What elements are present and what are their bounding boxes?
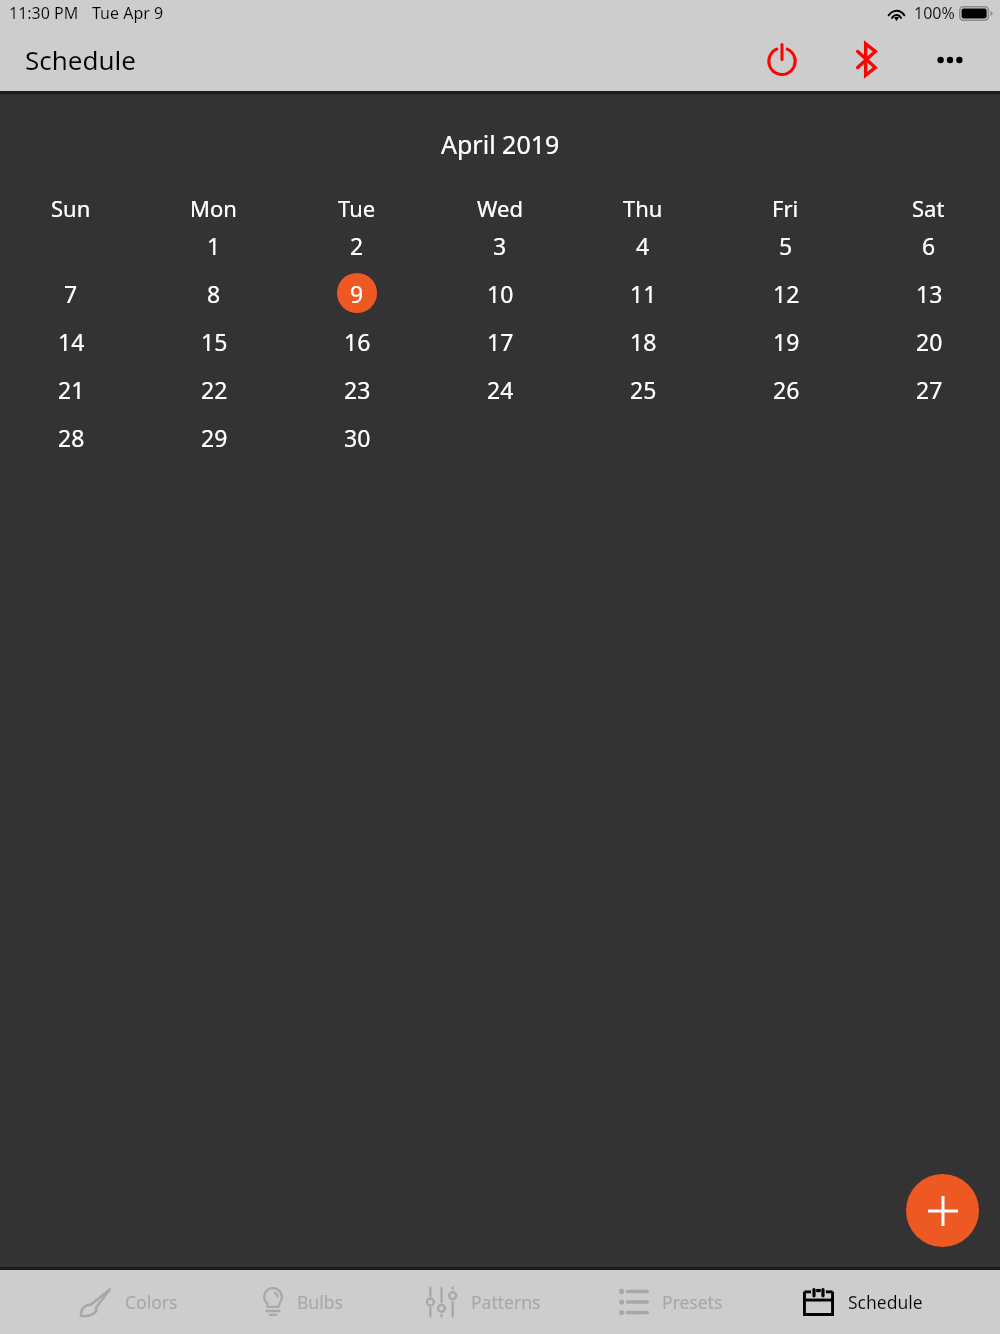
staticText: Mon [190,193,237,221]
button[interactable]: Bluetooth [824,28,908,91]
staticText: 7 [64,278,78,309]
button[interactable]: 22 [194,369,234,409]
staticText: Sat [912,193,945,221]
button[interactable]: Presets [619,1270,723,1334]
button[interactable]: Colors [80,1270,178,1334]
button[interactable]: 12 [766,273,806,313]
button[interactable]: 11 [623,273,663,313]
staticText: 6 [922,230,936,261]
staticText: 8 [207,278,221,309]
button[interactable]: 2 [337,225,377,265]
staticText: 27 [916,374,943,405]
staticText: Sun [51,193,91,221]
staticText: 3 [493,230,507,261]
staticText: 17 [487,326,514,357]
button[interactable]: 28 [51,417,91,457]
staticText: 5 [779,230,793,261]
button[interactable]: 6 [909,225,949,265]
button[interactable]: 21 [51,369,91,409]
button[interactable]: 15 [194,321,234,361]
button[interactable]: 25 [623,369,663,409]
staticText: Bulbs [297,1290,343,1314]
staticText: 28 [58,422,85,453]
button[interactable]: 27 [909,369,949,409]
staticText: Thu [623,193,663,221]
button[interactable]: Add schedule [906,1174,979,1247]
staticText: Schedule [848,1290,923,1314]
staticText: 26 [773,374,800,405]
button[interactable]: 13 [909,273,949,313]
staticText: 21 [58,374,85,405]
staticText: 18 [630,326,657,357]
staticText: 25 [630,374,657,405]
staticText: Patterns [471,1290,541,1314]
staticText: 22 [201,374,228,405]
staticText: Presets [662,1290,723,1314]
staticText: 15 [201,326,228,357]
button[interactable]: 3 [480,225,520,265]
button[interactable]: 16 [337,321,377,361]
staticText: 30 [344,422,371,453]
staticText: 19 [773,326,800,357]
staticText: 11 [630,278,657,309]
staticText: Wed [477,193,523,221]
staticText: 29 [201,422,228,453]
button[interactable]: 24 [480,369,520,409]
button[interactable]: 9 [337,273,377,313]
staticText: 100% [914,2,955,24]
staticText: Tue Apr 9 [92,2,164,24]
button[interactable]: 29 [194,417,234,457]
button[interactable]: 20 [909,321,949,361]
button[interactable]: 8 [194,273,234,313]
button[interactable]: Power [740,28,824,91]
button[interactable]: Patterns [426,1270,541,1334]
staticText: Tue [338,193,376,221]
button[interactable]: 30 [337,417,377,457]
button[interactable]: More options [908,28,992,91]
button[interactable]: 5 [766,225,806,265]
staticText: 23 [344,374,371,405]
staticText: April 2019 [441,127,560,161]
button[interactable]: 18 [623,321,663,361]
staticText: 16 [344,326,371,357]
button[interactable]: 17 [480,321,520,361]
button[interactable]: 10 [480,273,520,313]
button[interactable]: Schedule [803,1270,923,1334]
staticText: 24 [487,374,514,405]
staticText: Schedule [25,42,136,77]
staticText: 13 [916,278,943,309]
staticText: Colors [125,1290,178,1314]
staticText: 4 [636,230,650,261]
button[interactable]: 4 [623,225,663,265]
button[interactable]: 14 [51,321,91,361]
staticText: 2 [350,230,364,261]
staticText: 10 [487,278,514,309]
staticText: 14 [58,326,85,357]
button[interactable]: 26 [766,369,806,409]
staticText: 9 [350,278,364,309]
button[interactable]: 7 [51,273,91,313]
staticText: 12 [773,278,800,309]
staticText: 20 [916,326,943,357]
staticText: Fri [772,193,799,221]
staticText: 11:30 PM [9,2,79,24]
button[interactable]: 1 [194,225,234,265]
staticText: 1 [207,230,221,261]
button[interactable]: 23 [337,369,377,409]
button[interactable]: 19 [766,321,806,361]
button[interactable]: Bulbs [263,1270,343,1334]
